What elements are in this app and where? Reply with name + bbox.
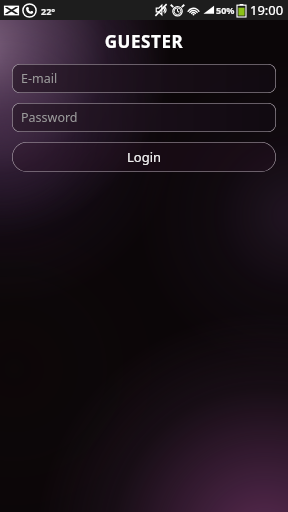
button[interactable]: Login [12, 142, 276, 172]
other: Cellular signal [203, 4, 215, 16]
other: Battery 50 percent [237, 4, 246, 17]
staticText: Password [21, 109, 78, 126]
staticText: 22° [41, 5, 56, 17]
staticText: E-mail [21, 70, 58, 87]
staticText: 19:00 [250, 1, 284, 19]
other: Unread mail [4, 3, 19, 18]
staticText: Login [127, 148, 162, 166]
staticText: GUESTER [0, 30, 288, 53]
other: Alarm set [171, 4, 184, 17]
other: WhatsApp [22, 3, 37, 18]
button[interactable]: E-mail [12, 64, 276, 93]
button[interactable]: Password [12, 103, 276, 132]
staticText: 50% [216, 4, 235, 16]
other: Wi-Fi [187, 4, 200, 17]
other: Silent mode [154, 3, 168, 17]
